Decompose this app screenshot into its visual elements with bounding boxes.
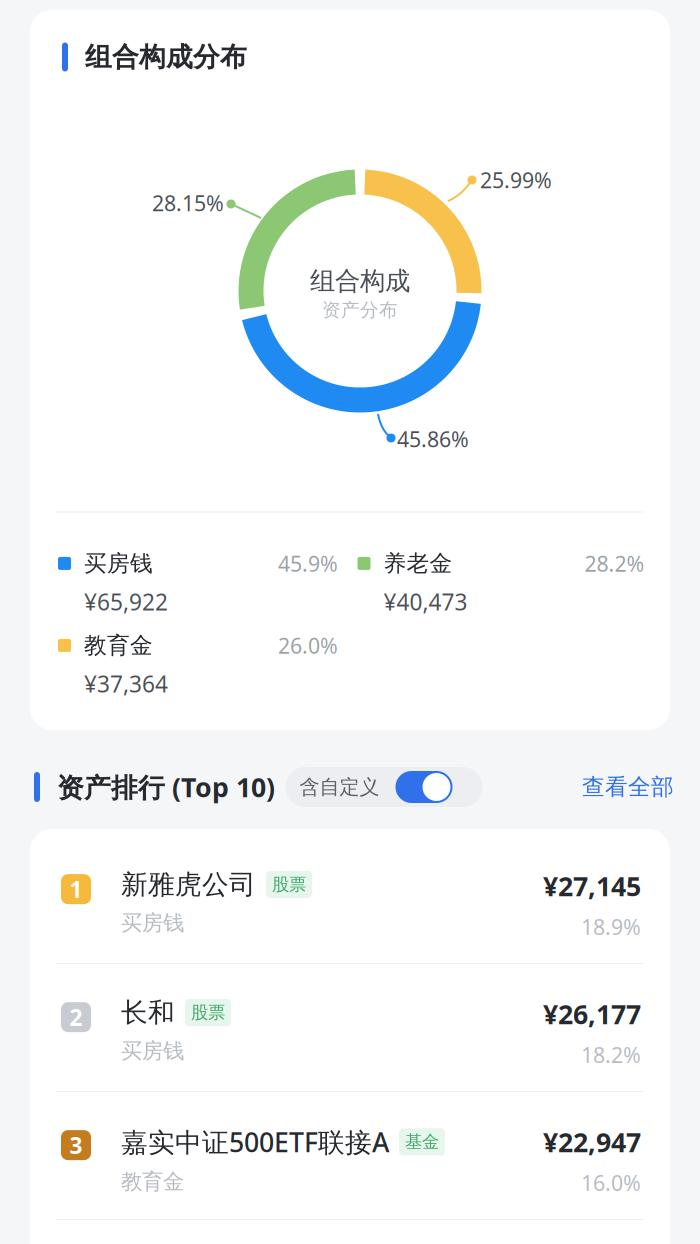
staticText: 16.0% bbox=[581, 1168, 641, 1197]
staticText: 养老金 bbox=[383, 549, 452, 577]
staticText: 新雅虎公司 bbox=[121, 868, 256, 901]
staticText: 查看全部 bbox=[582, 773, 674, 801]
button[interactable]: 3 bbox=[30, 1092, 670, 1219]
staticText: 28.15% bbox=[152, 189, 224, 217]
staticText: 资产分布 bbox=[322, 298, 398, 321]
staticText: 18.2% bbox=[581, 1040, 641, 1069]
staticText: 2 bbox=[69, 1002, 82, 1032]
staticText: ¥65,922 bbox=[84, 587, 168, 617]
staticText: 组合构成 bbox=[310, 265, 410, 296]
button[interactable]: 2 bbox=[30, 964, 670, 1091]
staticText: 买房钱 bbox=[84, 549, 153, 577]
staticText: ¥22,947 bbox=[543, 1124, 641, 1159]
button[interactable]: 1 bbox=[30, 829, 670, 963]
staticText: 买房钱 bbox=[121, 910, 184, 936]
button[interactable]: 查看全部 bbox=[582, 773, 674, 801]
staticText: ¥40,473 bbox=[383, 587, 467, 617]
staticText: ¥27,145 bbox=[543, 868, 641, 903]
staticText: 3 bbox=[69, 1130, 82, 1160]
staticText: 长和 bbox=[121, 996, 175, 1029]
staticText: ¥37,364 bbox=[84, 669, 168, 699]
staticText: 组合构成分布 bbox=[85, 41, 247, 73]
staticText: 买房钱 bbox=[121, 1038, 184, 1064]
staticText: 26.0% bbox=[278, 631, 338, 660]
staticText: 45.86% bbox=[397, 425, 469, 453]
staticText: 含自定义 bbox=[299, 775, 379, 799]
staticText: 45.9% bbox=[278, 549, 338, 578]
staticText: 嘉实中证500ETF联接A bbox=[121, 1124, 389, 1159]
staticText: 25.99% bbox=[480, 166, 552, 194]
staticText: 1 bbox=[69, 874, 82, 904]
staticText: 28.2% bbox=[584, 549, 644, 578]
button[interactable]: 含自定义 bbox=[285, 767, 482, 807]
staticText: 股票 bbox=[272, 874, 306, 895]
staticText: 教育金 bbox=[121, 1168, 184, 1195]
staticText: 股票 bbox=[191, 1002, 225, 1023]
staticText: 18.9% bbox=[581, 912, 641, 941]
staticText: 资产排行 (Top 10) bbox=[57, 769, 275, 805]
staticText: 教育金 bbox=[84, 631, 153, 659]
staticText: 基金 bbox=[405, 1131, 439, 1152]
staticText: ¥26,177 bbox=[543, 996, 641, 1031]
